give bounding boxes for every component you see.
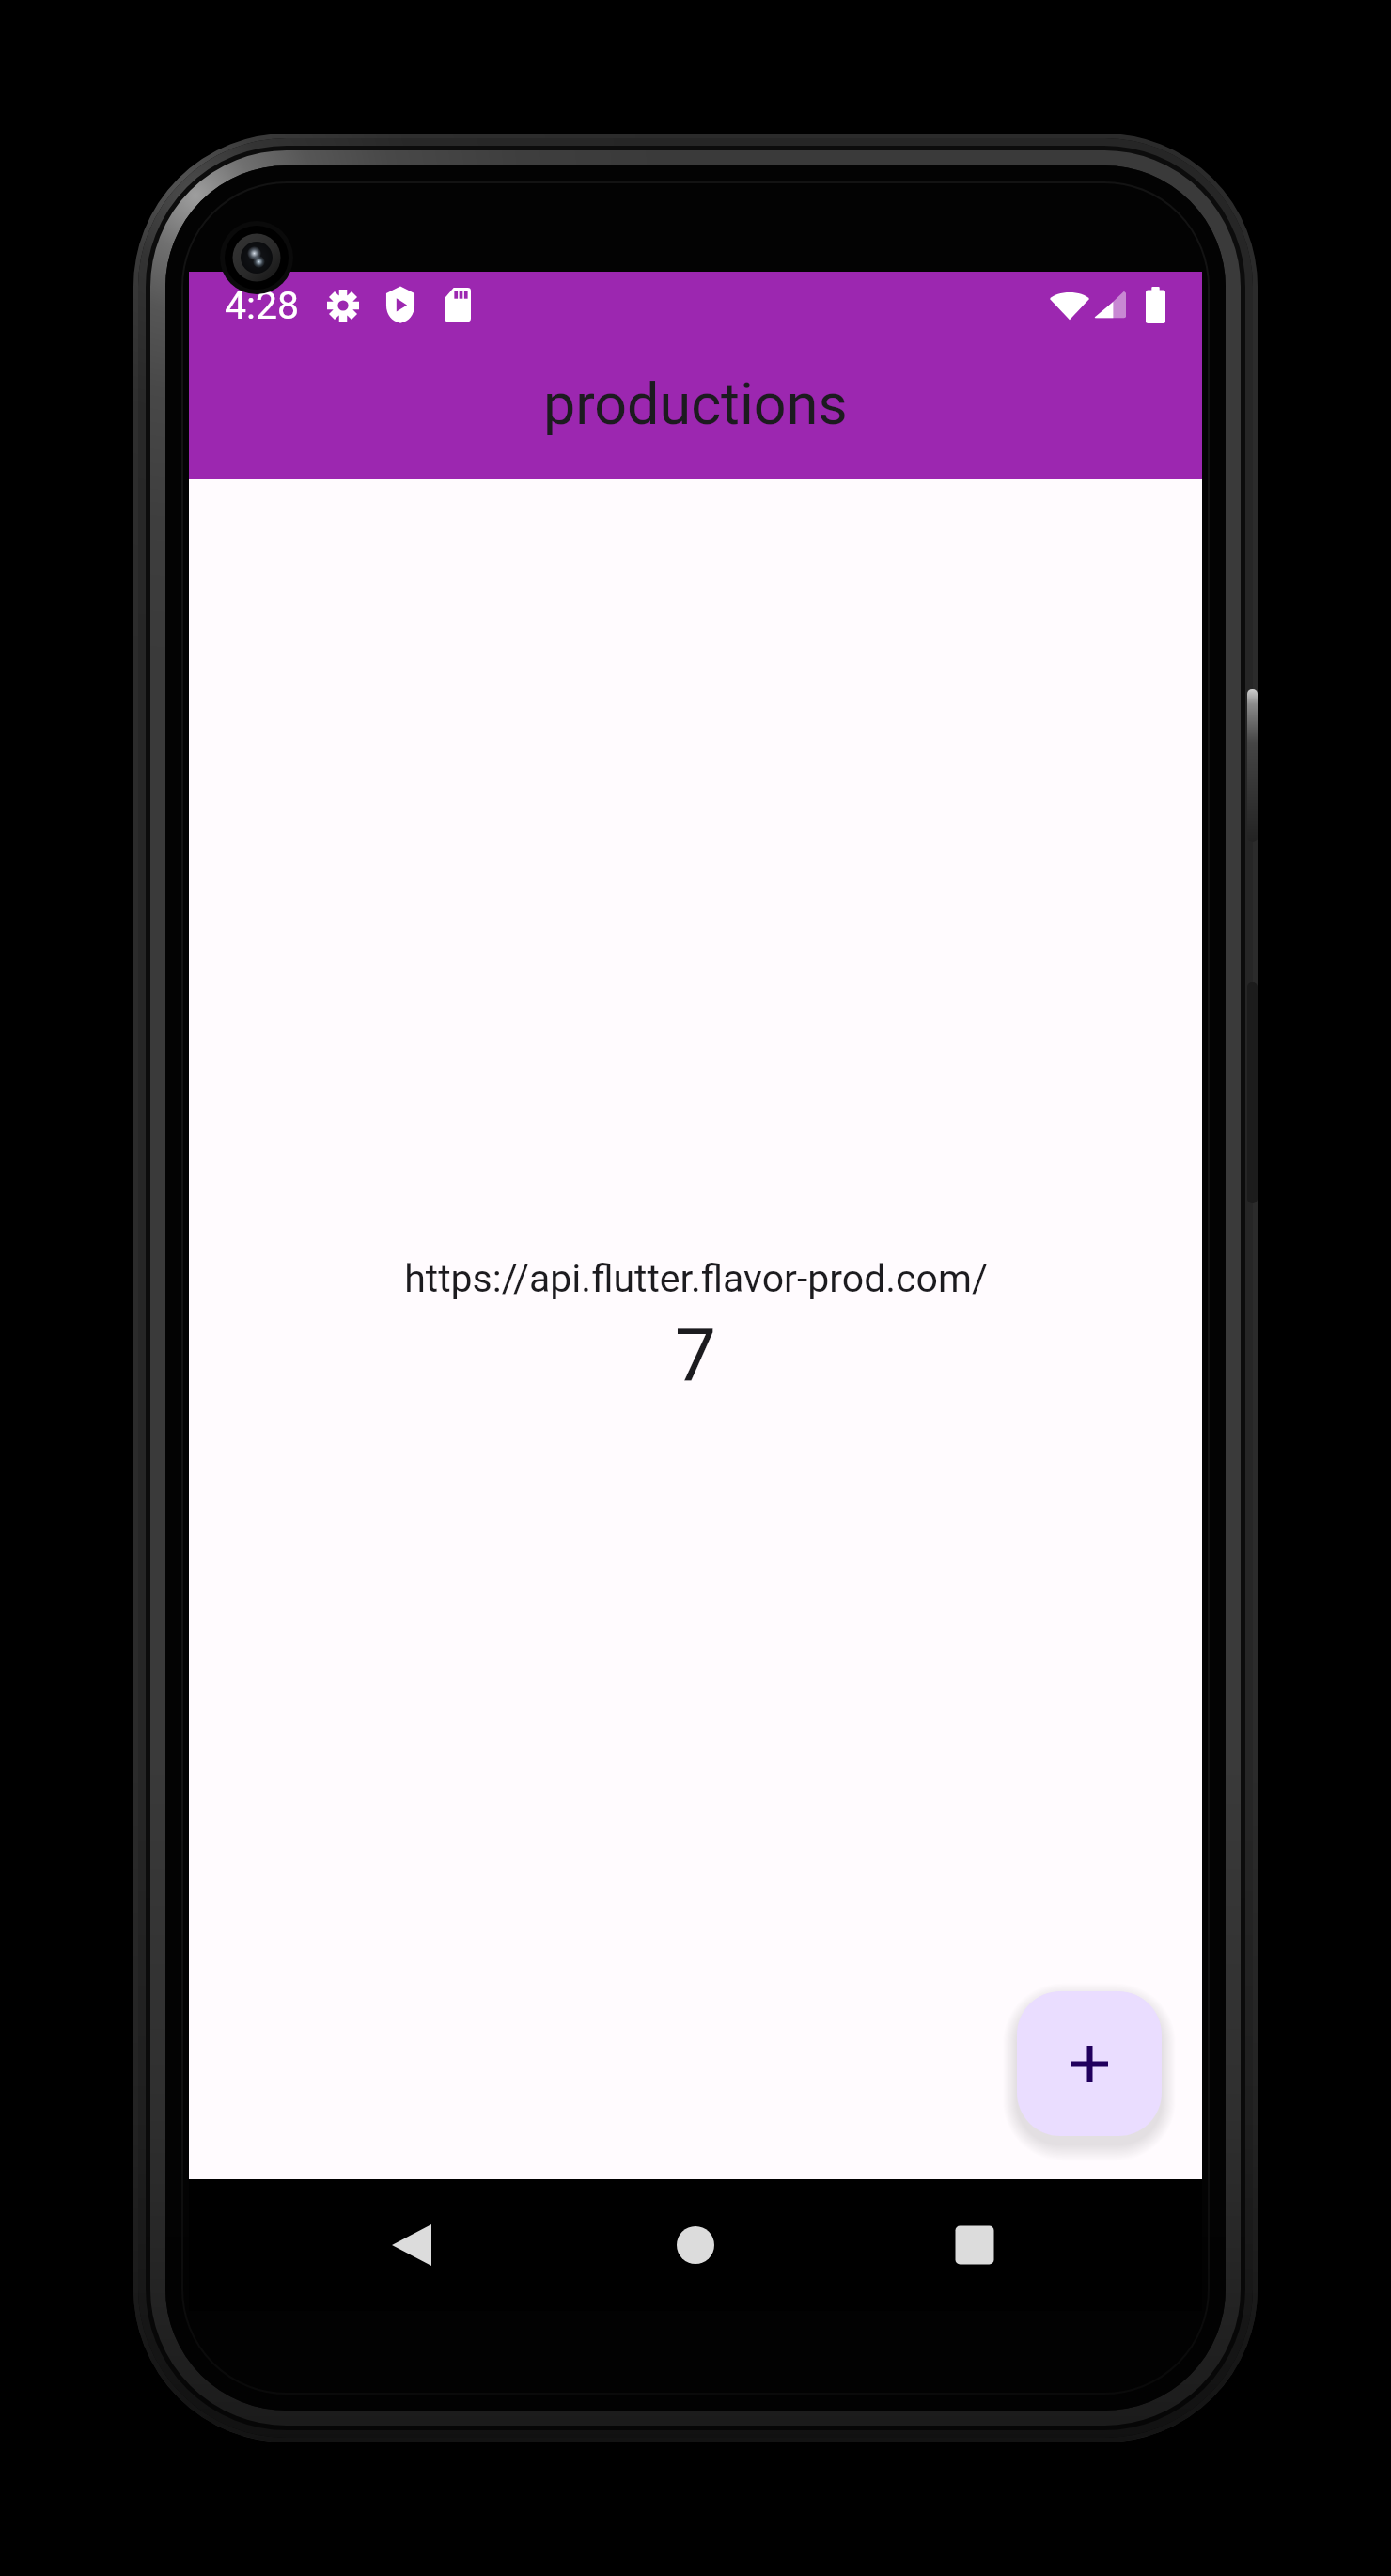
staticText: productions	[543, 370, 848, 437]
button[interactable]: Home	[644, 2193, 747, 2297]
staticText: 4:28	[225, 283, 300, 328]
button[interactable]: Add	[1017, 1991, 1162, 2136]
staticText: https://api.flutter.flavor-prod.com/	[404, 1256, 988, 1301]
staticText: 7	[675, 1313, 716, 1399]
button[interactable]: Back	[360, 2193, 463, 2297]
button[interactable]: Recent apps	[923, 2193, 1026, 2297]
